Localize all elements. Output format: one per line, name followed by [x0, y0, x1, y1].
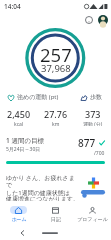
staticText: kcal	[14, 121, 24, 126]
staticText: 運動 (分)	[83, 121, 103, 126]
staticText: 257	[40, 42, 72, 67]
button[interactable]: 1 週間の目標	[3, 132, 108, 168]
staticText: km	[52, 121, 60, 126]
button[interactable]: Help	[82, 13, 95, 26]
button[interactable]: 2,450	[0, 108, 37, 126]
staticText: 日記	[51, 216, 61, 222]
staticText: ホーム	[11, 216, 27, 222]
staticText: ゆかり さん、お疲れさまで した1週間の健康状態は 健康増進につながります。	[6, 174, 79, 201]
staticText: 14:04	[4, 2, 21, 11]
staticText: 877	[78, 136, 96, 150]
button[interactable]: 257	[0, 0, 111, 92]
button[interactable]: 27.76	[37, 108, 74, 126]
staticText: 5月24日～30日	[6, 146, 41, 153]
staticText: 373	[85, 108, 101, 120]
button[interactable]: プロフィール	[74, 204, 111, 222]
button[interactable]: ホーム	[0, 204, 37, 222]
button[interactable]: 373	[74, 108, 111, 126]
staticText: 歩数	[90, 93, 102, 101]
staticText: 37,968	[41, 62, 71, 75]
staticText: プロフィール	[77, 216, 108, 222]
button[interactable]: ゆかり さん、お疲れさまで した1週間の健康状態は 健康増進につながります。	[3, 172, 108, 203]
staticText: /700	[94, 150, 105, 157]
button[interactable]: 日記	[37, 204, 74, 222]
staticText: 27.76	[44, 108, 68, 120]
staticText: 強めの運動 (pt)	[17, 93, 59, 101]
button[interactable]: Account	[96, 13, 109, 26]
staticText: 1 週間の目標	[6, 136, 45, 145]
staticText: 2,450	[7, 108, 31, 120]
